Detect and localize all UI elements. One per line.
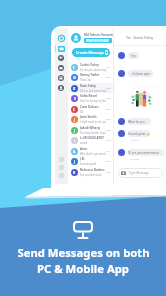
- button[interactable]: C: [68, 62, 113, 73]
- staticText: 1:41 PM: [130, 157, 139, 160]
- staticText: 2:58: [106, 118, 111, 121]
- button[interactable]: A: [68, 146, 113, 157]
- staticText: Md Tahsin Hossain: [84, 33, 113, 37]
- staticText: S: [74, 96, 76, 101]
- button[interactable]: Link: [59, 165, 64, 170]
- button[interactable]: Briefcase: [58, 65, 64, 71]
- button[interactable]: Help: [59, 157, 64, 162]
- staticText: it's been ages: [132, 72, 150, 76]
- staticText: saved: [80, 141, 88, 145]
- staticText: Jane Smith: [80, 115, 97, 119]
- staticText: J: [74, 128, 76, 133]
- staticText: What do you think?: [128, 120, 151, 124]
- button[interactable]: Create Message: [72, 48, 110, 57]
- button[interactable]: J: [68, 114, 113, 125]
- staticText: Nancy Tatler: [80, 73, 100, 77]
- staticText: Sofia Ravel: [80, 94, 97, 98]
- button[interactable]: Calendar: [58, 75, 64, 81]
- staticText: 1:12: [106, 150, 111, 153]
- button[interactable]: N: [68, 72, 113, 83]
- staticText: 3:55: [106, 87, 111, 90]
- button[interactable]: S: [68, 93, 113, 104]
- button[interactable]: Settings: [59, 173, 64, 178]
- button[interactable]: Profile: [58, 85, 64, 91]
- staticText: Type Message: [129, 171, 149, 175]
- staticText: 12:48: [105, 160, 111, 163]
- staticText: N: [73, 75, 76, 80]
- staticText: Cedric Foley: [80, 63, 99, 67]
- staticText: C: [73, 65, 76, 70]
- staticText: Kate Foley: [80, 84, 97, 88]
- staticText: 2:30: [106, 129, 111, 132]
- button[interactable]: Contacts: [58, 55, 64, 61]
- staticText: Ok: [80, 110, 84, 114]
- button[interactable]: Md Tahsin Hossain: [71, 33, 113, 43]
- button[interactable]: Type Message: [118, 168, 163, 178]
- staticText: C: [73, 107, 76, 112]
- staticText: (+38) 0020 4987: [80, 136, 104, 140]
- staticText: Ok see you tomorrow at 7pm: [80, 89, 106, 93]
- staticText: R: [73, 170, 76, 175]
- staticText: J.B.: [80, 157, 85, 161]
- staticText: 1:55: [106, 139, 111, 142]
- button[interactable]: (: [68, 135, 113, 146]
- staticText: PREMIUM MEMBER: [86, 39, 110, 42]
- staticText: To: Greta Foley: [126, 35, 154, 40]
- other: Desktop and mobile: [73, 221, 93, 239]
- staticText: 4:05: [106, 76, 111, 79]
- button[interactable]: Messages: [58, 46, 65, 52]
- staticText: Hey I'm doing my homework: [80, 99, 106, 103]
- button[interactable]: R: [68, 167, 113, 178]
- staticText: J: [74, 117, 76, 122]
- button[interactable]: C: [68, 104, 113, 115]
- staticText: Why didn't you send me it yet: [80, 152, 106, 156]
- staticText: 3:22: [106, 108, 111, 111]
- button[interactable]: App logo: [58, 35, 65, 42]
- staticText: See you later boo: [80, 173, 102, 177]
- staticText: Rebecca Drakes: [80, 168, 105, 172]
- staticText: Cara Dolsen: [80, 105, 99, 109]
- button[interactable]: K: [68, 83, 113, 94]
- staticText: I shall need to see you soon: [80, 120, 106, 124]
- staticText: 3:40: [106, 97, 111, 100]
- button[interactable]: J: [68, 125, 113, 136]
- staticText: I'm okay thanks, how about: [80, 131, 106, 135]
- staticText: hey: [131, 54, 136, 58]
- staticText: Sounds great 👍: [128, 132, 150, 136]
- staticText: I'll see you tomorrow at 3pm: [128, 151, 164, 155]
- staticText: Sounds good: [80, 162, 97, 166]
- staticText: J: [74, 159, 76, 164]
- staticText: 11:30: [105, 171, 111, 174]
- staticText: PC & Mobile App: [37, 261, 129, 276]
- staticText: Create Message: [76, 50, 105, 55]
- staticText: K: [73, 86, 76, 91]
- staticText: A: [73, 149, 76, 154]
- staticText: (: [74, 138, 76, 143]
- staticText: That's ok: [80, 78, 91, 82]
- staticText: Ania: [80, 147, 87, 151]
- staticText: 1:41 PM: [130, 138, 139, 141]
- staticText: Send Messages on both: [17, 245, 150, 260]
- staticText: 4:11: [106, 66, 111, 69]
- staticText: Jakob Wharg: [80, 126, 100, 130]
- staticText: Hi, are you please sign the...: [80, 68, 106, 72]
- button[interactable]: J: [68, 156, 113, 167]
